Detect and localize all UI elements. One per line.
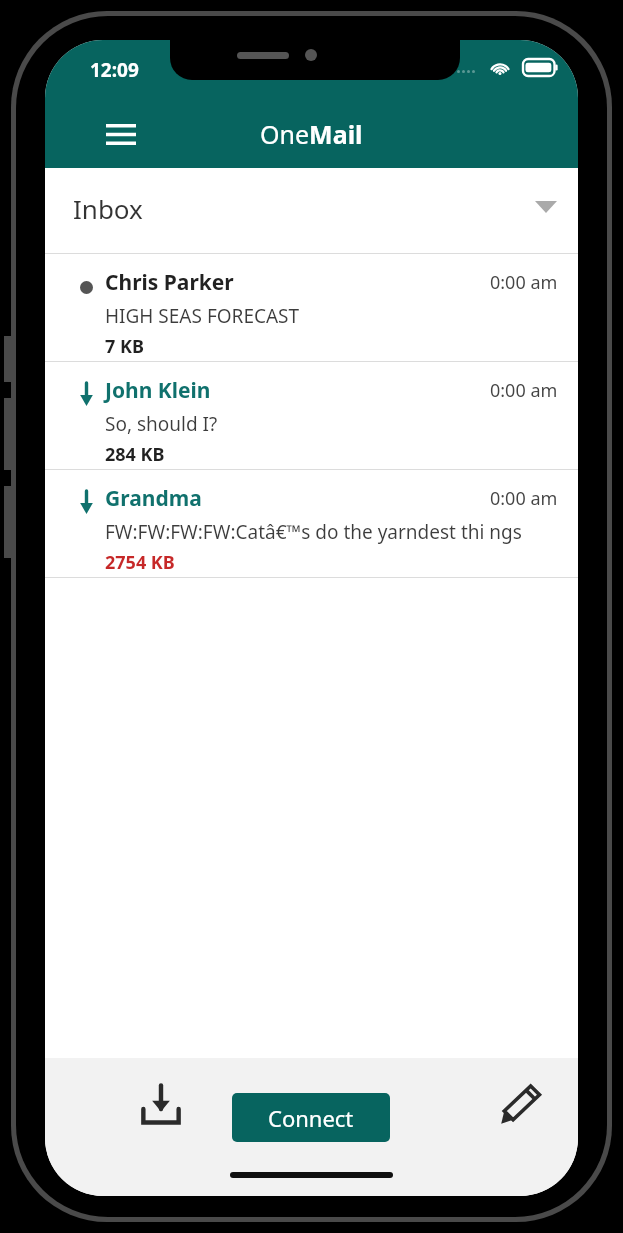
staticText: 284 KB <box>105 442 165 467</box>
staticText: 0:00 am <box>490 486 558 511</box>
staticText: Chris Parker <box>105 268 234 297</box>
button[interactable]: Grandma <box>45 470 578 577</box>
staticText: So, should I? <box>105 411 218 437</box>
button[interactable]: Chris Parker <box>45 254 578 361</box>
staticText: Grandma <box>105 484 202 513</box>
staticText: FW:FW:FW:FW:Catâ€™s do the yarndest thi … <box>105 519 522 545</box>
staticText: 7 KB <box>105 334 144 359</box>
staticText: Inbox <box>73 191 143 226</box>
button[interactable]: Inbox <box>45 168 578 253</box>
staticText: Connect <box>268 1103 354 1133</box>
button[interactable]: Connect <box>232 1093 390 1142</box>
button[interactable]: Compose message <box>478 1066 564 1142</box>
staticText: 2754 KB <box>105 550 175 575</box>
staticText: HIGH SEAS FORECAST <box>105 303 300 329</box>
staticText: 0:00 am <box>490 270 558 295</box>
staticText: 0:00 am <box>490 378 558 403</box>
button[interactable]: Download messages <box>118 1066 204 1142</box>
staticText: OneMail <box>260 117 363 151</box>
button[interactable]: Open navigation menu <box>90 110 152 158</box>
staticText: 12:09 <box>90 57 139 83</box>
staticText: John Klein <box>105 376 211 405</box>
button[interactable]: John Klein <box>45 362 578 469</box>
